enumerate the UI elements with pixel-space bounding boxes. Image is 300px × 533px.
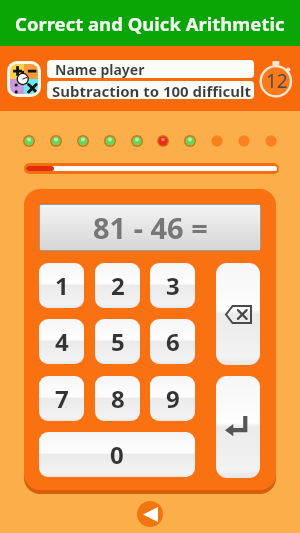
staticText: 3 (166, 269, 180, 302)
button[interactable]: 3 (150, 263, 195, 308)
button[interactable]: 5 (95, 319, 140, 364)
staticText: Name player (55, 60, 145, 78)
button[interactable]: 7 (39, 376, 84, 421)
button[interactable]: 1 (39, 263, 84, 308)
button[interactable]: 9 (150, 376, 195, 421)
staticText: 6 (166, 325, 180, 358)
staticText: 9 (166, 382, 180, 415)
button[interactable]: 8 (95, 376, 140, 421)
button[interactable]: 4 (39, 319, 84, 364)
staticText: 81 - 46 = (93, 208, 208, 247)
staticText: 0 (110, 438, 124, 471)
button[interactable]: 6 (150, 319, 195, 364)
button[interactable]: 0 (39, 432, 195, 477)
button[interactable]: 2 (95, 263, 140, 308)
staticText: 1 (55, 269, 69, 302)
button[interactable]: Backspace (216, 263, 260, 365)
staticText: Correct and Quick Arithmetic (15, 11, 285, 36)
staticText: Subtraction to 100 difficult (52, 81, 252, 99)
button[interactable]: Enter (216, 376, 260, 478)
button[interactable]: Name player (47, 60, 254, 78)
button[interactable]: Back (137, 501, 163, 527)
other: Timer (258, 60, 296, 98)
staticText: 4 (55, 325, 69, 358)
staticText: 5 (111, 325, 125, 358)
other: App icon (10, 64, 38, 94)
staticText: 7 (55, 382, 69, 415)
staticText: 8 (111, 382, 125, 415)
staticText: 2 (111, 269, 125, 302)
staticText: 12 (266, 68, 288, 94)
button[interactable]: Subtraction to 100 difficult (47, 81, 254, 99)
